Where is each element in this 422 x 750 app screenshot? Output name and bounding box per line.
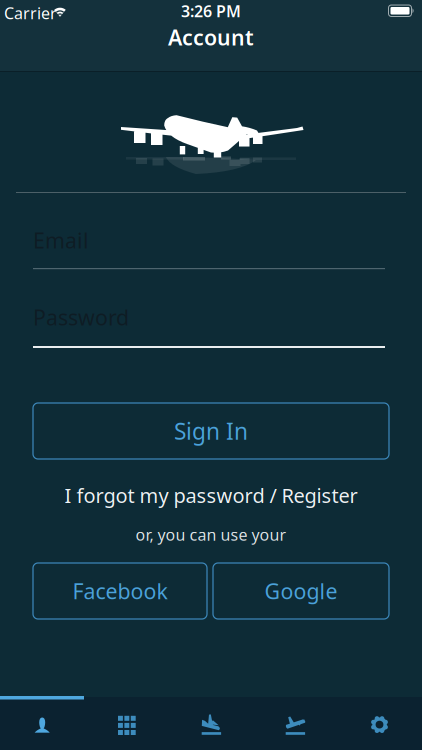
button[interactable]: Email	[33, 233, 385, 270]
button[interactable]: Sign In	[33, 403, 389, 459]
staticText: Email	[33, 226, 89, 254]
button[interactable]: Arrivals	[169, 697, 253, 750]
staticText: Carrier	[4, 2, 57, 24]
staticText: I forgot my password / Register	[64, 482, 357, 509]
button[interactable]: Account	[0, 697, 84, 750]
button[interactable]: Password	[33, 310, 385, 348]
button[interactable]: Facebook	[33, 563, 207, 619]
button[interactable]: Departures	[253, 697, 338, 750]
staticText: Google	[264, 577, 337, 605]
button[interactable]: More	[84, 697, 169, 750]
button[interactable]: Google	[213, 563, 389, 619]
staticText: Sign In	[174, 416, 248, 446]
staticText: 3:26 PM	[181, 0, 241, 22]
staticText: Facebook	[72, 577, 167, 605]
staticText: Password	[33, 303, 129, 331]
staticText: Account	[168, 23, 254, 51]
button[interactable]: Settings	[338, 697, 422, 750]
button[interactable]: I forgot my password / Register	[0, 482, 422, 509]
staticText: or, you can use your	[135, 524, 286, 545]
